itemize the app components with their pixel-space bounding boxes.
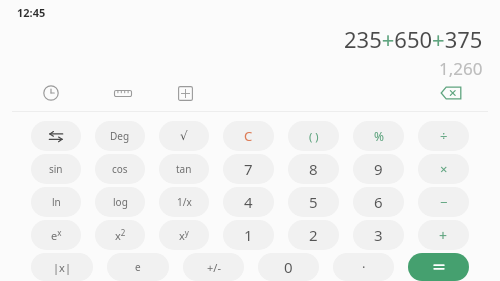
staticText: 5 [309, 192, 318, 212]
button[interactable]: Square root [159, 121, 209, 151]
button[interactable]: Equals [408, 253, 469, 281]
staticText: |x| [53, 260, 71, 275]
button[interactable]: log [95, 187, 145, 217]
staticText: x2 [115, 227, 126, 243]
button[interactable]: + [418, 220, 469, 250]
staticText: Deg [110, 129, 130, 143]
button[interactable]: 0 [258, 253, 319, 281]
button[interactable]: 8 [288, 154, 339, 184]
button[interactable]: % [353, 121, 404, 151]
button[interactable]: ln [31, 187, 81, 217]
button[interactable]: Scientific keypad [172, 82, 198, 104]
staticText: + [439, 226, 448, 245]
staticText: √ [180, 129, 188, 143]
staticText: 3 [374, 225, 383, 245]
staticText: ln [52, 195, 61, 209]
staticText: × [440, 160, 448, 178]
button[interactable]: e to the x [31, 220, 81, 250]
button[interactable]: ÷ [418, 121, 469, 151]
button[interactable]: − [418, 187, 469, 217]
button[interactable]: 7 [223, 154, 274, 184]
button[interactable]: sin [31, 154, 81, 184]
button[interactable]: cos [95, 154, 145, 184]
staticText: 4 [244, 192, 253, 212]
button[interactable]: Unit converter [110, 82, 136, 104]
staticText: − [440, 193, 448, 211]
staticText: 2 [309, 225, 318, 245]
staticText: e [135, 260, 141, 274]
button[interactable]: 2 [288, 220, 339, 250]
staticText: sin [49, 162, 63, 176]
staticText: 7 [244, 159, 253, 179]
staticText: ÷ [440, 127, 448, 145]
button[interactable]: 1/x [159, 187, 209, 217]
staticText: tan [176, 162, 192, 176]
button[interactable]: x squared [95, 220, 145, 250]
staticText: cos [112, 162, 128, 176]
button[interactable]: Swap [31, 121, 81, 151]
button[interactable]: +/- [183, 253, 244, 281]
staticText: · [362, 258, 366, 276]
button[interactable]: x to the power y [159, 220, 209, 250]
button[interactable]: · [333, 253, 394, 281]
button[interactable]: Absolute value [31, 253, 93, 281]
button[interactable]: Backspace [436, 82, 466, 104]
button[interactable]: tan [159, 154, 209, 184]
staticText: log [113, 195, 128, 209]
staticText: ( ) [309, 129, 319, 144]
staticText: 8 [309, 159, 318, 179]
button[interactable]: ( ) [288, 121, 339, 151]
staticText: 235+650+375 [344, 24, 483, 54]
button[interactable]: History [38, 82, 64, 104]
button[interactable]: × [418, 154, 469, 184]
staticText: C [244, 127, 253, 145]
button[interactable]: C [223, 121, 274, 151]
staticText: 1,260 [439, 57, 483, 80]
staticText: 12:45 [17, 5, 46, 20]
button[interactable]: 6 [353, 187, 404, 217]
staticText: 1/x [177, 195, 192, 209]
staticText: +/- [207, 260, 221, 275]
staticText: ex [51, 227, 62, 243]
button[interactable]: Deg [95, 121, 145, 151]
staticText: 6 [374, 192, 383, 212]
button[interactable]: 3 [353, 220, 404, 250]
button[interactable]: 4 [223, 187, 274, 217]
staticText: % [374, 128, 384, 144]
staticText: xy [179, 227, 189, 243]
button[interactable]: e [107, 253, 169, 281]
button[interactable]: 9 [353, 154, 404, 184]
staticText: 9 [374, 159, 383, 179]
staticText: 1 [244, 225, 253, 245]
button[interactable]: 5 [288, 187, 339, 217]
button[interactable]: 1 [223, 220, 274, 250]
staticText: 0 [284, 257, 293, 277]
